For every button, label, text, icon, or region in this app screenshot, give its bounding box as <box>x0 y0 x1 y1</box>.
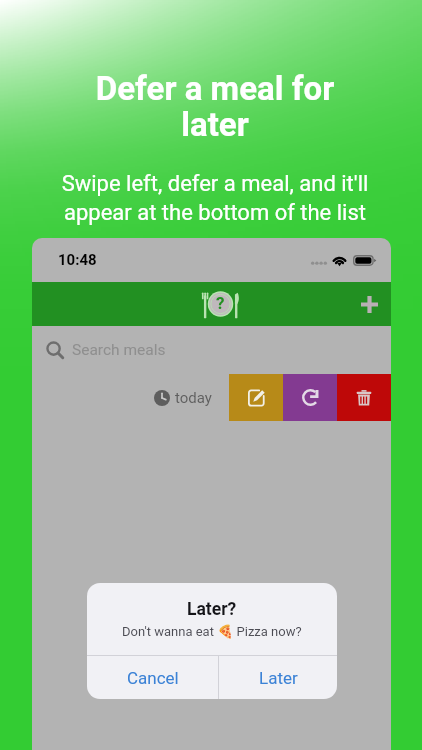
button[interactable]: Repeat <box>283 374 337 421</box>
staticText: Search meals <box>72 341 166 359</box>
staticText: Later <box>259 668 298 688</box>
staticText: Swipe left, defer a meal, and it'll appe… <box>4 171 422 225</box>
staticText: ? <box>216 293 225 313</box>
staticText: Later? <box>187 599 237 620</box>
staticText: 10:48 <box>58 251 97 269</box>
button[interactable]: Later <box>219 656 337 699</box>
staticText: today <box>175 389 212 407</box>
button[interactable]: Delete <box>337 374 391 421</box>
button[interactable]: Edit <box>229 374 283 421</box>
button[interactable]: Cancel <box>87 656 218 699</box>
staticText: Cancel <box>127 668 179 688</box>
staticText: Defer a meal for later <box>4 69 422 144</box>
staticText: Don't wanna eat 🍕 Pizza now? <box>122 624 302 639</box>
button[interactable]: Add meal <box>352 287 386 321</box>
